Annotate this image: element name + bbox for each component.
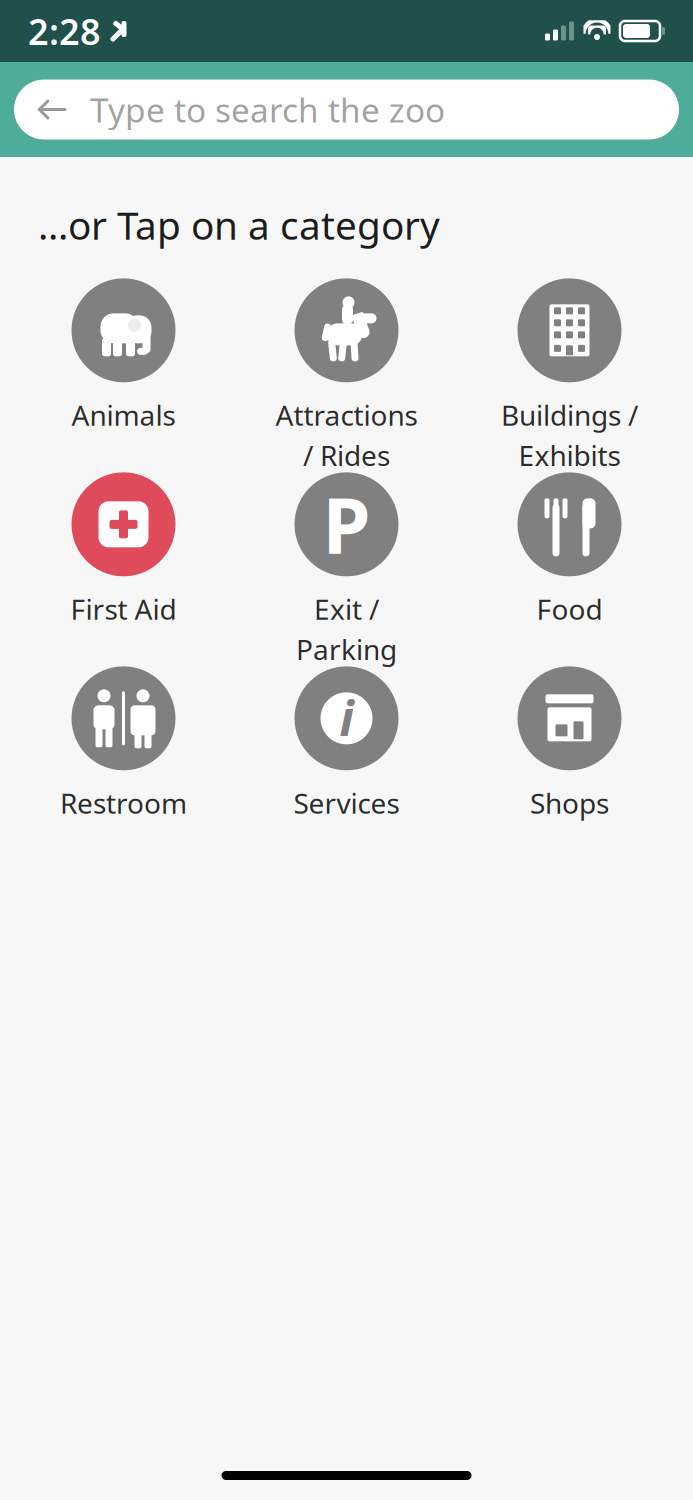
button[interactable]: Food — [458, 472, 681, 644]
button[interactable]: P — [235, 472, 458, 644]
staticText: First Aid — [70, 590, 176, 627]
button[interactable]: Back — [14, 79, 90, 139]
staticText: 2:28 — [28, 7, 101, 55]
staticText: Services — [293, 784, 399, 821]
button[interactable]: Buildings / — [458, 278, 681, 450]
staticText: P — [322, 473, 370, 576]
staticText: Parking — [296, 630, 397, 668]
staticText: Buildings / — [501, 396, 638, 433]
staticText: Restroom — [60, 784, 187, 821]
staticText: i — [339, 685, 353, 749]
staticText: Exit / — [314, 590, 379, 627]
button[interactable]: Animals — [12, 278, 235, 450]
staticText: Type to search the zoo — [90, 87, 445, 132]
staticText: Shops — [530, 784, 609, 821]
staticText: ...or Tap on a category — [38, 199, 440, 250]
staticText: Attractions — [275, 396, 417, 433]
button[interactable]: Attractions — [235, 278, 458, 450]
staticText: Animals — [71, 396, 175, 433]
button[interactable]: Restroom — [12, 666, 235, 838]
button[interactable]: First Aid — [12, 472, 235, 644]
button[interactable]: i — [235, 666, 458, 838]
staticText: Food — [536, 590, 602, 627]
button[interactable]: Shops — [458, 666, 681, 838]
staticText: Exhibits — [518, 436, 620, 474]
staticText: / Rides — [303, 436, 390, 474]
